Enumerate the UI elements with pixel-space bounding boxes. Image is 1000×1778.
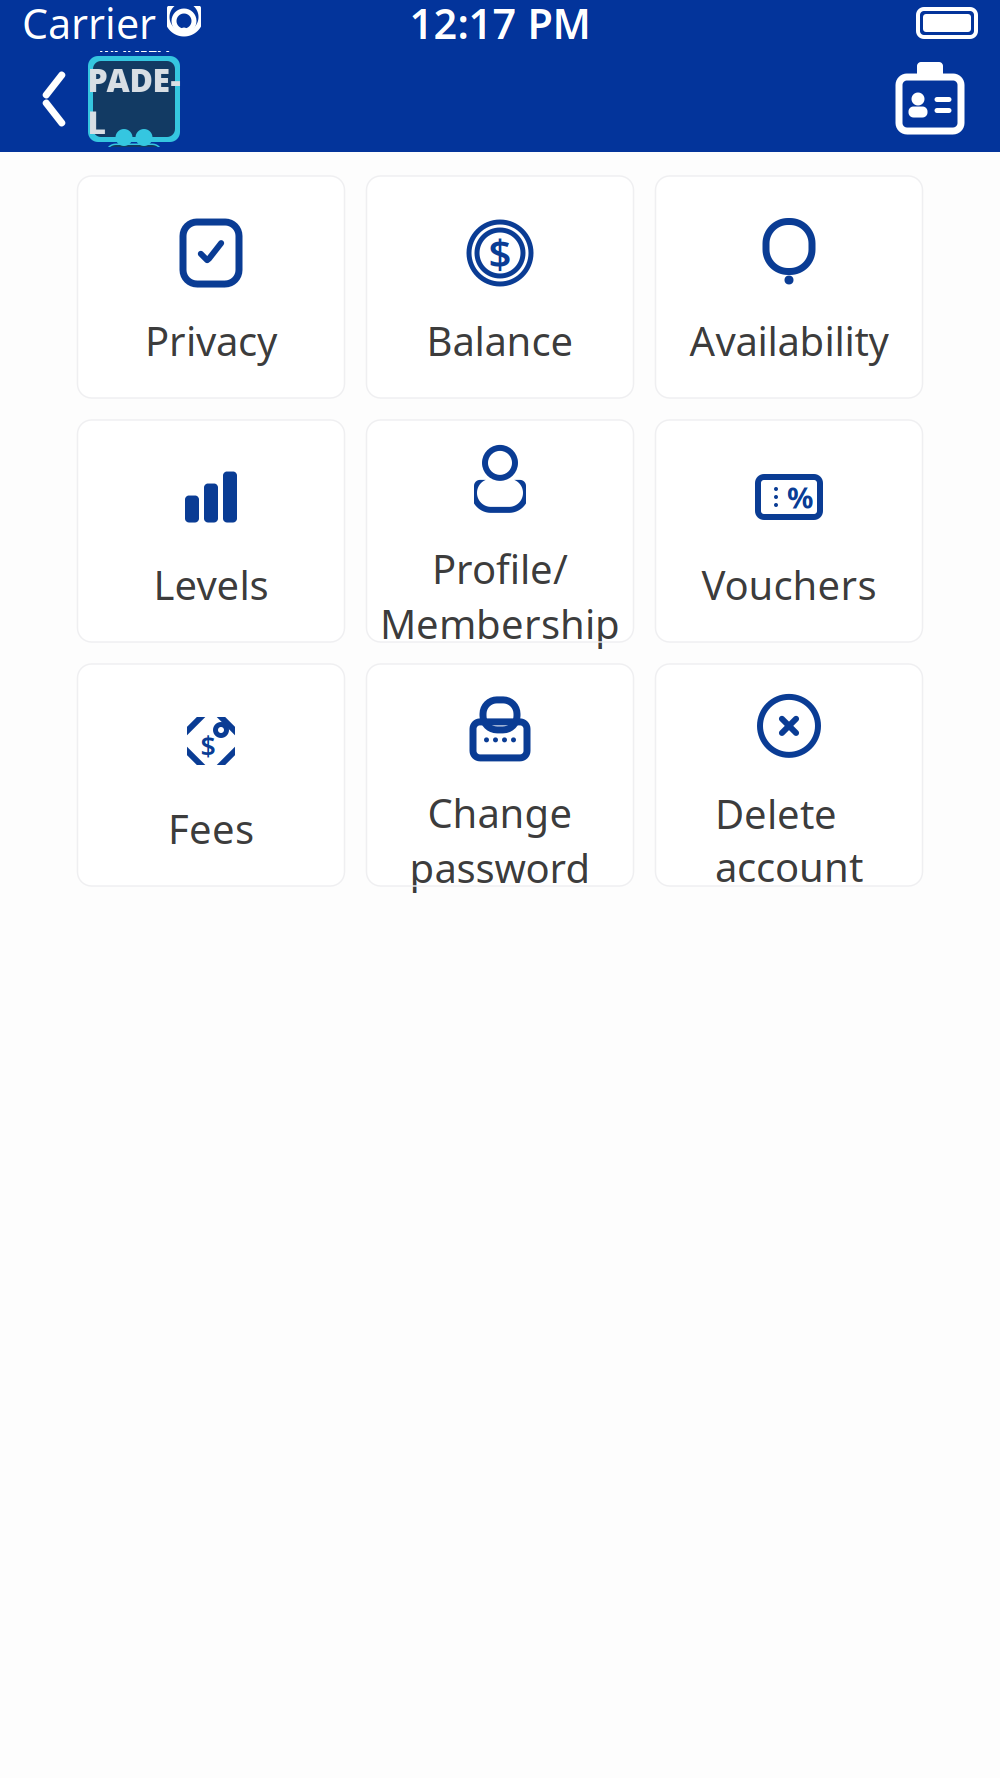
- staticText: Vouchers: [701, 558, 876, 611]
- staticText: Privacy: [145, 314, 277, 367]
- button[interactable]: Change: [366, 664, 633, 886]
- staticText: $: [488, 226, 511, 279]
- staticText: Carrier: [22, 0, 156, 50]
- button[interactable]: Levels: [77, 420, 344, 642]
- button[interactable]: Availability: [655, 176, 922, 398]
- staticText: %: [787, 477, 813, 516]
- button[interactable]: Delete account: [655, 664, 922, 886]
- staticText: Change: [427, 786, 572, 839]
- staticText: 12:17 PM: [409, 0, 590, 50]
- button[interactable]: $: [366, 176, 633, 398]
- button[interactable]: $: [77, 664, 344, 886]
- staticText: password: [409, 841, 590, 894]
- staticText: Profile/: [432, 542, 568, 595]
- staticText: Levels: [153, 558, 268, 611]
- staticText: $: [200, 728, 215, 764]
- staticText: CLUB: [115, 144, 153, 164]
- staticText: Balance: [426, 314, 573, 367]
- button[interactable]: Privacy: [77, 176, 344, 398]
- staticText: Membership: [380, 597, 620, 650]
- button[interactable]: %: [655, 420, 922, 642]
- button[interactable]: Profile/: [366, 420, 633, 642]
- staticText: Availability: [689, 314, 888, 367]
- staticText: MANILA: [98, 34, 169, 57]
- button[interactable]: Back: [26, 64, 82, 134]
- staticText: Delete account: [715, 787, 863, 893]
- staticText: PADEL: [87, 58, 180, 143]
- staticText: Fees: [168, 802, 254, 855]
- button[interactable]: Membership card: [894, 63, 966, 135]
